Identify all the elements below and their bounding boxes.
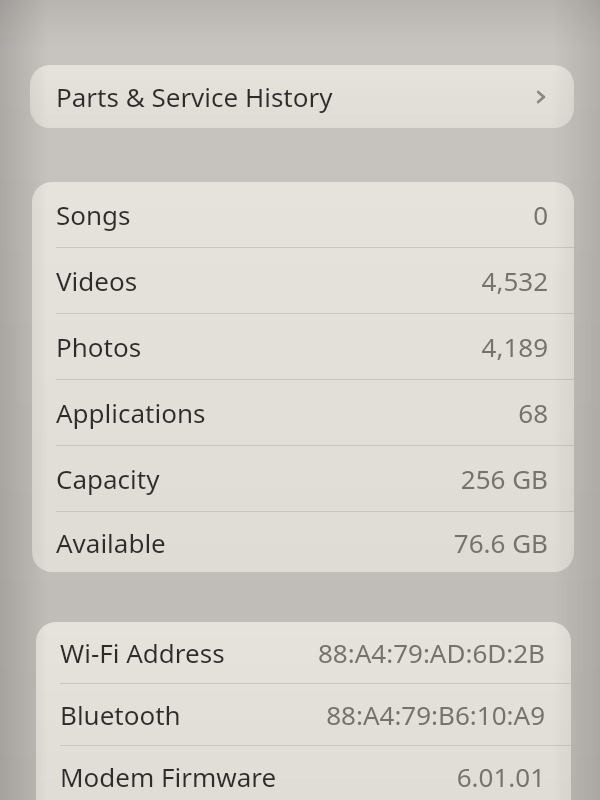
staticText: 256 GB: [460, 461, 548, 496]
staticText: Parts & Service History: [56, 79, 528, 114]
button[interactable]: Videos: [32, 248, 574, 314]
staticText: Photos: [56, 329, 481, 364]
staticText: Available: [56, 525, 453, 560]
button[interactable]: Capacity: [32, 446, 574, 512]
staticText: 68: [518, 395, 548, 430]
staticText: 6.01.01: [456, 759, 545, 794]
staticText: 88:A4:79:B6:10:A9: [326, 697, 545, 732]
staticText: Videos: [56, 263, 481, 298]
staticText: 4,189: [481, 329, 548, 364]
staticText: 88:A4:79:AD:6D:2B: [317, 635, 545, 670]
staticText: 0: [533, 197, 548, 232]
button[interactable]: Wi-Fi Address: [36, 622, 571, 684]
staticText: Bluetooth: [60, 697, 326, 732]
other: Open Parts and Service History: [528, 84, 554, 110]
button[interactable]: Songs: [32, 182, 574, 248]
staticText: Wi-Fi Address: [60, 635, 317, 670]
button[interactable]: Photos: [32, 314, 574, 380]
button[interactable]: Applications: [32, 380, 574, 446]
staticText: Applications: [56, 395, 518, 430]
staticText: Modem Firmware: [60, 759, 456, 794]
button[interactable]: Bluetooth: [36, 684, 571, 746]
staticText: 4,532: [481, 263, 548, 298]
staticText: 76.6 GB: [453, 525, 548, 560]
staticText: Capacity: [56, 461, 460, 496]
button[interactable]: Parts & Service History: [30, 65, 574, 128]
staticText: Songs: [56, 197, 533, 232]
button[interactable]: Modem Firmware: [36, 746, 571, 800]
button[interactable]: Available: [32, 512, 574, 572]
